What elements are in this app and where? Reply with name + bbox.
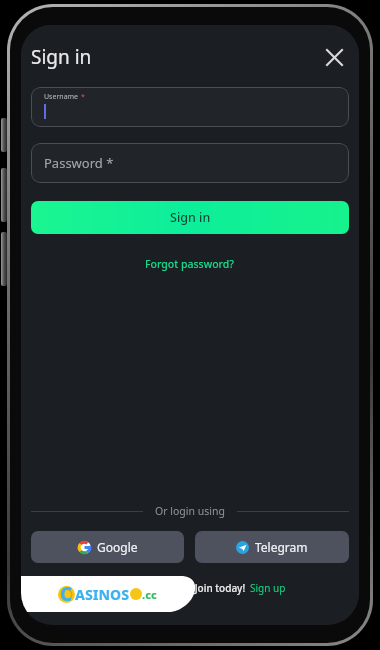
staticText: C — [60, 581, 73, 607]
staticText: Sign up — [250, 581, 286, 595]
button[interactable]: Sign in — [31, 201, 349, 234]
button[interactable]: Google — [31, 531, 184, 563]
button[interactable]: Forgot password? — [139, 254, 241, 274]
staticText: Don't have an account? Join today! — [81, 581, 246, 595]
button[interactable]: Username — [31, 87, 349, 127]
staticText: Forgot password? — [145, 257, 235, 271]
button[interactable]: Close — [317, 40, 351, 74]
staticText: Or login using — [155, 504, 225, 518]
button[interactable]: Sign up — [250, 581, 286, 595]
staticText: Google — [97, 539, 138, 555]
staticText: Telegram — [255, 539, 308, 555]
staticText: Sign in — [170, 209, 211, 226]
staticText: Password * — [44, 154, 114, 172]
staticText: Username — [44, 92, 79, 102]
button[interactable]: Password * — [31, 143, 349, 183]
staticText: ASINOS — [75, 585, 130, 604]
staticText: .cc — [142, 587, 157, 602]
staticText: * — [81, 92, 85, 102]
staticText: Sign in — [31, 44, 92, 70]
button[interactable]: Telegram — [195, 531, 349, 563]
